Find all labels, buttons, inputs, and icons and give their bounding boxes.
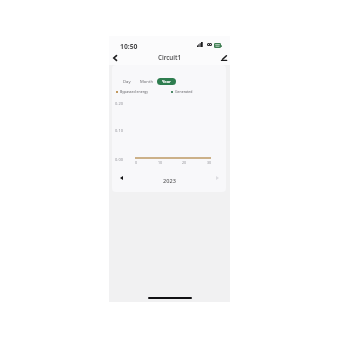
staticText: Year <box>162 79 171 85</box>
staticText: Circuit1 <box>109 53 230 61</box>
button[interactable]: Month <box>138 77 156 87</box>
staticText: 0.10 <box>109 128 123 133</box>
staticText: 30 <box>204 160 214 165</box>
staticText: 0 <box>131 160 141 165</box>
staticText: 10 <box>155 160 165 165</box>
button[interactable]: Previous year <box>116 173 126 183</box>
staticText: Day <box>123 79 131 85</box>
button[interactable]: Next year <box>212 173 222 183</box>
staticText: 20 <box>179 160 189 165</box>
staticText: 0.00 <box>109 157 123 162</box>
button[interactable]: Edit <box>218 52 230 64</box>
button[interactable]: Back <box>109 52 121 64</box>
staticText: 10:50 <box>120 42 138 51</box>
staticText: 2023 <box>109 177 230 185</box>
staticText: Generated <box>175 89 193 94</box>
button[interactable]: Year <box>157 78 176 85</box>
staticText: 0.20 <box>109 101 123 106</box>
staticText: Month <box>140 79 154 85</box>
staticText: Bypassed energy <box>120 89 149 94</box>
button[interactable]: Day <box>121 77 133 87</box>
